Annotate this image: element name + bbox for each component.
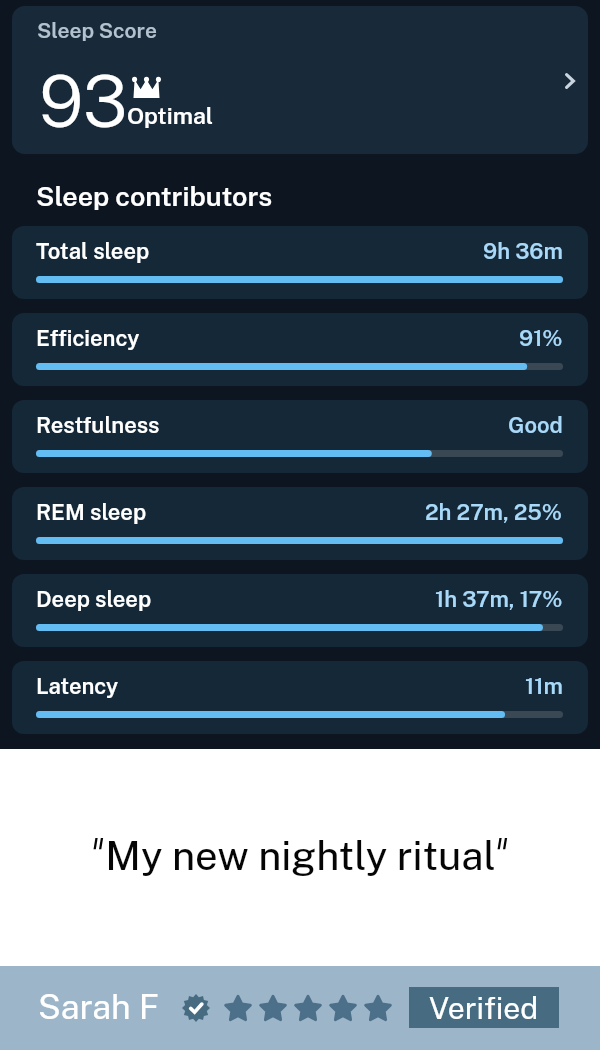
staticText: Sleep Score <box>37 18 157 43</box>
button[interactable]: Latency <box>12 661 588 734</box>
staticText: Sleep contributors <box>36 180 273 212</box>
staticText: Optimal <box>127 102 214 129</box>
staticText: 1h 37m, 17% <box>435 586 563 612</box>
button[interactable]: Verified reviewer <box>182 994 210 1022</box>
staticText: My new nightly ritual <box>105 832 496 879</box>
staticText: Restfulness <box>36 412 160 438</box>
other: Open sleep score details <box>565 73 575 89</box>
staticText: 93 <box>39 59 128 144</box>
button[interactable]: Verified <box>409 987 559 1028</box>
button[interactable]: REM sleep <box>12 487 588 560</box>
staticText: Total sleep <box>36 238 150 264</box>
staticText: Sarah F <box>38 987 160 1027</box>
button[interactable]: Deep sleep <box>12 574 588 647</box>
staticText: Verified <box>429 990 539 1025</box>
staticText: Latency <box>36 673 119 699</box>
staticText: 11m <box>525 673 563 699</box>
button[interactable]: Restfulness <box>12 400 588 473</box>
button[interactable]: Efficiency <box>12 313 588 386</box>
staticText: Deep sleep <box>36 586 152 612</box>
staticText: 9h 36m <box>483 238 563 264</box>
staticText: 91% <box>519 325 563 351</box>
staticText: REM sleep <box>36 499 147 525</box>
staticText: Efficiency <box>36 325 140 351</box>
staticText: 2h 27m, 25% <box>425 499 563 525</box>
button[interactable]: Sleep Score <box>12 6 588 154</box>
staticText: Good <box>508 412 563 438</box>
button[interactable]: Total sleep <box>12 226 588 299</box>
